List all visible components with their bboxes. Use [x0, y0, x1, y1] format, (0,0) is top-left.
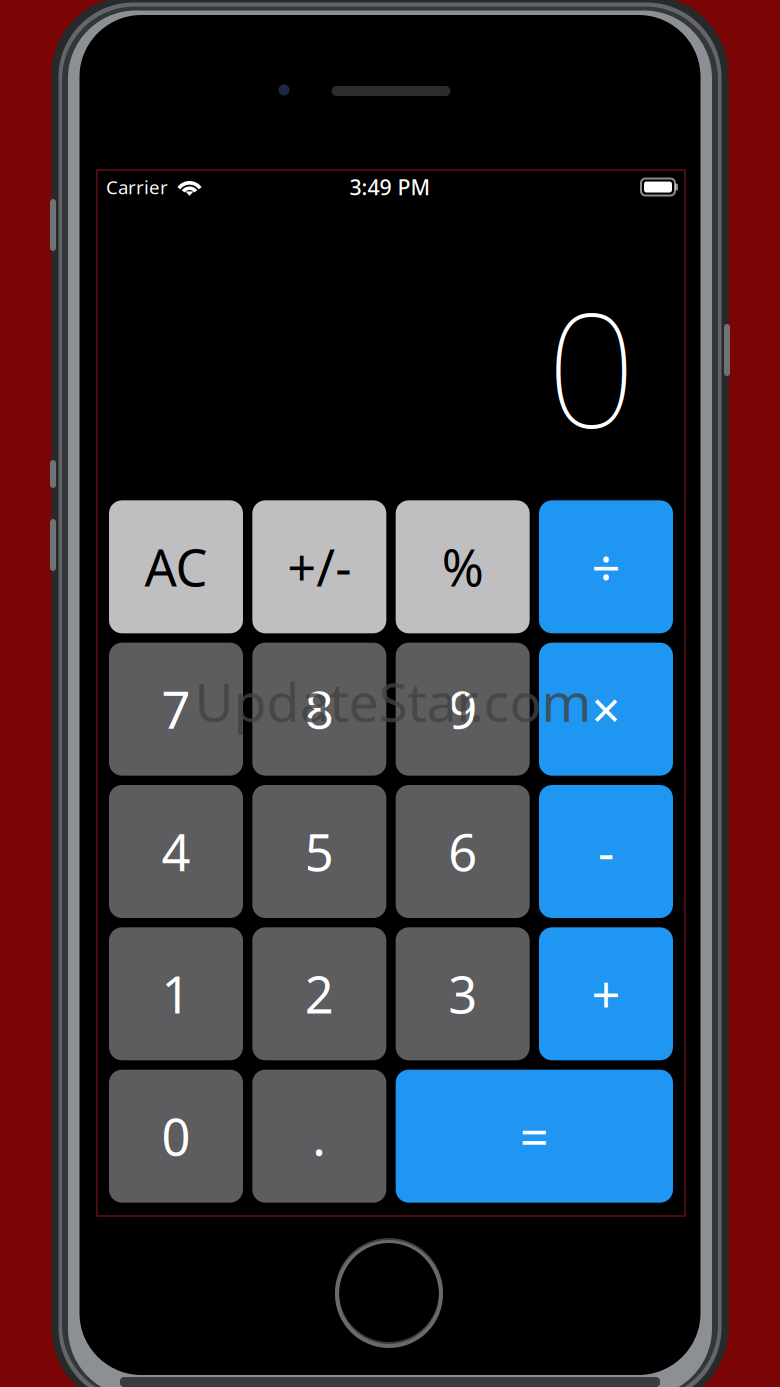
button[interactable]: +	[539, 927, 673, 1060]
staticText: 0	[161, 1102, 190, 1170]
staticText: .	[312, 1102, 326, 1170]
button[interactable]: 8	[252, 643, 386, 776]
staticText: 9	[448, 675, 477, 743]
staticText: ÷	[591, 533, 620, 600]
staticText: +/-	[287, 533, 351, 600]
staticText: UpdateStar.com	[194, 666, 591, 736]
staticText: 3	[448, 960, 477, 1027]
staticText: 8	[305, 675, 334, 743]
button[interactable]: 1	[109, 927, 243, 1060]
button[interactable]: 2	[252, 927, 386, 1060]
button[interactable]: 7	[109, 643, 243, 776]
button[interactable]: ×	[539, 643, 673, 776]
button[interactable]: ÷	[539, 500, 673, 633]
button[interactable]: %	[396, 500, 530, 633]
staticText: 2	[305, 960, 334, 1027]
button[interactable]: +/-	[252, 500, 386, 633]
button[interactable]: =	[396, 1070, 673, 1203]
staticText: AC	[144, 533, 207, 600]
staticText: 6	[448, 818, 477, 885]
staticText: %	[442, 533, 484, 600]
staticText: =	[520, 1102, 549, 1170]
button[interactable]: -	[539, 785, 673, 918]
staticText: 5	[305, 818, 334, 885]
staticText: 3:49 PM	[349, 173, 430, 201]
button[interactable]: 4	[109, 785, 243, 918]
button[interactable]: .	[252, 1070, 386, 1203]
button[interactable]: AC	[109, 500, 243, 633]
button[interactable]: 0	[109, 1070, 243, 1203]
staticText: 0	[546, 261, 636, 470]
staticText: Carrier	[106, 175, 168, 199]
staticText: ×	[591, 675, 620, 743]
staticText: +	[591, 960, 620, 1027]
button[interactable]: 9	[396, 643, 530, 776]
staticText: 4	[161, 818, 190, 885]
staticText: 1	[161, 960, 190, 1027]
button[interactable]: 3	[396, 927, 530, 1060]
button[interactable]: 6	[396, 785, 530, 918]
staticText: 7	[161, 675, 190, 743]
button[interactable]: 5	[252, 785, 386, 918]
staticText: -	[598, 818, 614, 885]
